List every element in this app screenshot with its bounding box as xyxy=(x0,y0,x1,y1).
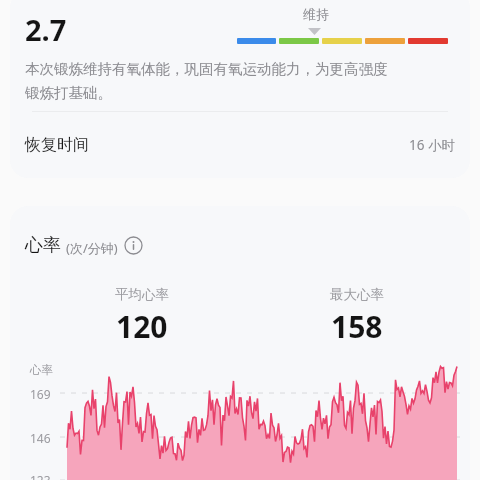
staticText: 心率 xyxy=(30,363,53,377)
staticText: 本次锻炼维持有氧体能，巩固有氧运动能力，为更高强度 锻炼打基础。 xyxy=(25,60,388,102)
staticText: 心率 xyxy=(25,234,61,257)
staticText: 最大心率 xyxy=(330,286,384,303)
button[interactable]: 心率 xyxy=(25,234,143,257)
staticText: 146 xyxy=(30,430,51,446)
staticText: 平均心率 xyxy=(115,286,169,303)
staticText: 恢复时间 xyxy=(25,135,89,155)
staticText: 2.7 xyxy=(25,10,67,49)
staticText: 维持 xyxy=(303,6,329,22)
staticText: 16 小时 xyxy=(409,136,455,154)
button[interactable]: 恢复时间 xyxy=(10,112,470,178)
staticText: 158 xyxy=(331,306,383,347)
button[interactable]: 心率信息 xyxy=(124,236,143,255)
staticText: 120 xyxy=(116,306,168,347)
staticText: 169 xyxy=(30,386,51,402)
staticText: (次/分钟) xyxy=(66,239,118,257)
staticText: 123 xyxy=(30,472,51,480)
